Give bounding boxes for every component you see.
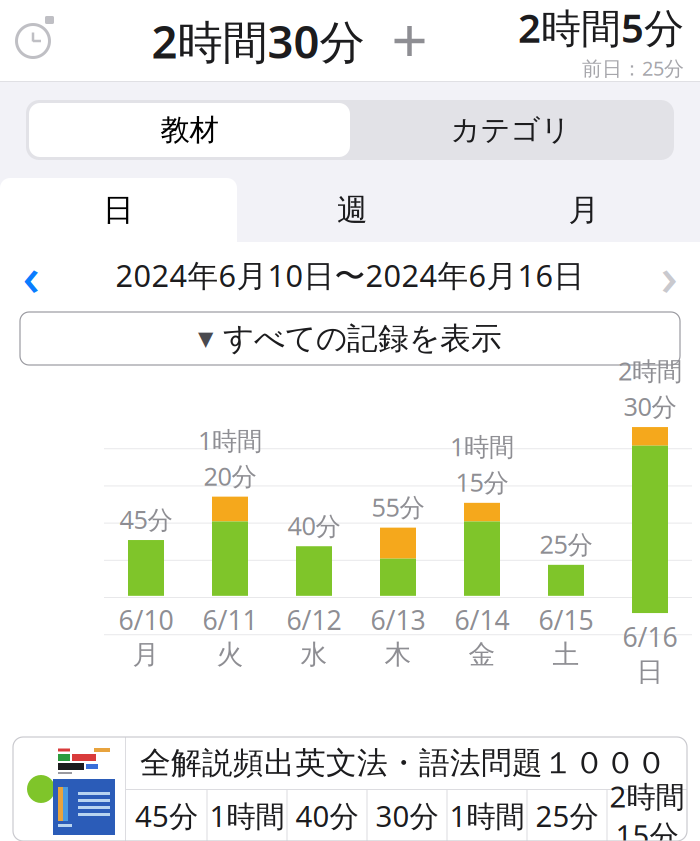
staticText: 6/11 — [202, 602, 257, 637]
button[interactable]: 月 — [468, 178, 700, 242]
staticText: すべての記録を表示 — [223, 320, 502, 357]
staticText: 15分 — [615, 815, 678, 841]
button[interactable]: カテゴリ — [350, 103, 671, 157]
staticText: 金 — [468, 638, 495, 671]
staticText: 6/12 — [286, 602, 341, 637]
button[interactable]: 次の週 — [638, 244, 700, 306]
staticText: 20分 — [203, 459, 256, 493]
staticText: 1時間 — [450, 429, 514, 463]
staticText: 木 — [384, 638, 411, 671]
staticText: 全解説頻出英文法・語法問題１０００ — [140, 744, 667, 782]
staticText: 30分 — [375, 796, 438, 835]
staticText: 2時間 — [609, 776, 684, 815]
staticText: 2時間5分 — [518, 1, 684, 54]
staticText: 30分 — [623, 389, 676, 423]
staticText: 25分 — [539, 527, 592, 561]
button[interactable]: 学習履歴 — [0, 8, 66, 74]
staticText: 土 — [552, 638, 579, 671]
staticText: 6/10 — [118, 602, 173, 637]
button[interactable]: 教材 — [29, 103, 350, 157]
button[interactable]: ▼ — [20, 312, 680, 365]
staticText: 火 — [216, 638, 243, 671]
staticText: カテゴリ — [450, 112, 570, 148]
staticText: 40分 — [287, 509, 340, 542]
button[interactable]: 全解説頻出英文法・語法問題１０００ — [13, 737, 687, 841]
staticText: 月 — [132, 638, 159, 671]
staticText: 1時間 — [449, 796, 524, 835]
staticText: 日 — [636, 655, 663, 688]
staticText: 日 — [103, 191, 134, 229]
button[interactable]: 前の週 — [0, 244, 62, 306]
staticText: 2024年6月10日〜2024年6月16日 — [115, 255, 584, 295]
staticText: 25分 — [535, 796, 598, 835]
staticText: 45分 — [135, 796, 198, 835]
staticText: 40分 — [295, 796, 358, 835]
staticText: 前日：25分 — [582, 55, 684, 81]
staticText: 55分 — [371, 490, 424, 524]
staticText: 6/14 — [454, 602, 509, 637]
staticText: ‹ — [22, 240, 39, 310]
button[interactable]: 日 — [0, 178, 237, 242]
button[interactable]: 記録を追加 — [386, 18, 432, 64]
staticText: 1時間 — [209, 796, 284, 835]
staticText: 1時間 — [198, 423, 262, 457]
staticText: 教材 — [160, 112, 218, 148]
staticText: 2時間 — [618, 354, 682, 387]
staticText: 月 — [568, 191, 599, 229]
staticText: 週 — [337, 191, 368, 229]
staticText: 6/15 — [538, 602, 593, 637]
staticText: 水 — [300, 638, 327, 671]
staticText: ▼ — [198, 327, 213, 350]
staticText: 6/13 — [370, 602, 425, 637]
staticText: 2時間30分 — [151, 11, 364, 71]
staticText: 6/16 — [622, 619, 677, 654]
staticText: 45分 — [119, 502, 172, 536]
button[interactable]: 週 — [237, 178, 468, 242]
staticText: 15分 — [455, 465, 508, 499]
staticText: › — [660, 240, 677, 310]
